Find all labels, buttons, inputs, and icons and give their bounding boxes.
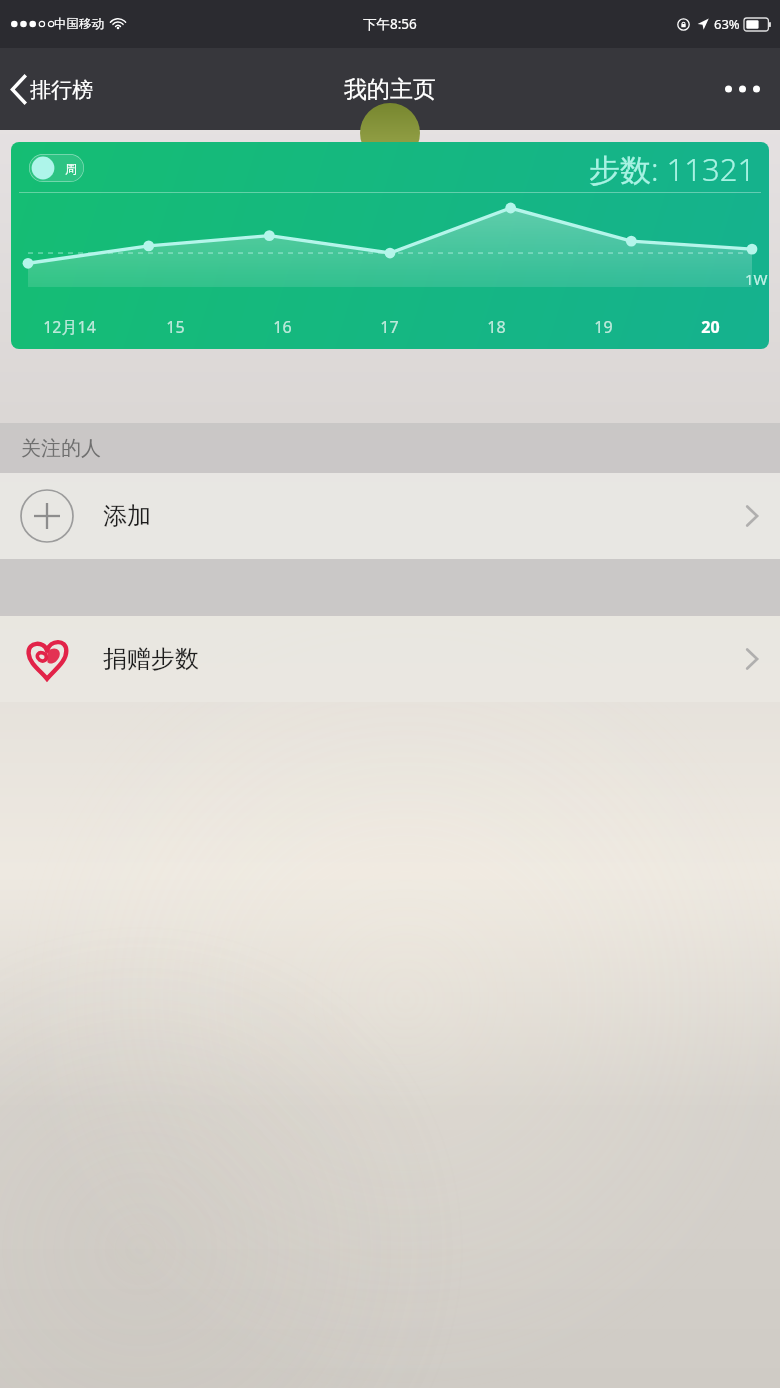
staticText: 添加	[103, 501, 151, 531]
staticText: 17	[380, 316, 399, 338]
staticText: 关注的人	[21, 436, 101, 461]
button[interactable]: 周	[11, 142, 769, 349]
staticText: 我的主页	[344, 75, 436, 104]
staticText: 20	[701, 316, 720, 338]
staticText: 周	[65, 161, 77, 176]
staticText: 12月14	[43, 316, 96, 338]
staticText: 19	[594, 316, 613, 338]
button[interactable]: More options	[705, 63, 780, 115]
staticText: 捐赠步数	[103, 644, 199, 674]
button[interactable]: 周	[29, 154, 84, 182]
staticText: 下午8:56	[363, 15, 417, 33]
staticText: 16	[273, 316, 292, 338]
staticText: 中国移动	[54, 16, 104, 32]
staticText: 1W	[745, 269, 768, 289]
staticText: 63%	[714, 15, 740, 33]
staticText: 18	[487, 316, 506, 338]
staticText: 15	[166, 316, 185, 338]
button[interactable]: 捐赠步数	[0, 616, 780, 702]
button[interactable]: 排行榜	[0, 62, 107, 117]
staticText: 排行榜	[30, 77, 93, 103]
staticText: 步数: 11321	[589, 148, 756, 190]
button[interactable]: 添加	[0, 473, 780, 559]
